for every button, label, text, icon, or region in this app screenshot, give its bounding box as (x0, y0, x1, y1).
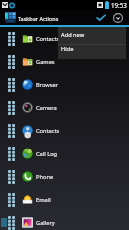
button[interactable]: Camera (0, 96, 129, 119)
button[interactable]: Email (0, 188, 129, 211)
staticText: Hide (61, 45, 74, 53)
staticText: Games (36, 58, 55, 66)
button[interactable]: Phone (0, 165, 129, 188)
staticText: Phone (36, 173, 54, 181)
button[interactable]: Browser (0, 73, 129, 96)
staticText: Taskbar Actions (18, 15, 59, 22)
staticText: Gallery (36, 219, 55, 227)
staticText: 19:53 (111, 1, 127, 9)
button[interactable]: Contacts (0, 27, 129, 50)
button[interactable]: Gallery (0, 211, 129, 230)
staticText: Contacts (36, 127, 60, 135)
staticText: Browser (36, 81, 59, 89)
staticText: Email (36, 196, 51, 204)
button[interactable]: Games (0, 50, 129, 73)
staticText: Add new (61, 31, 85, 39)
staticText: Contacts (36, 35, 60, 43)
button[interactable]: Done (93, 10, 109, 25)
button[interactable]: Call Log (0, 142, 129, 165)
button[interactable]: More options (110, 10, 126, 25)
button[interactable]: Contacts (0, 119, 129, 142)
button[interactable]: Add new (58, 27, 126, 44)
staticText: Camera (36, 104, 57, 112)
button[interactable]: Hide (58, 43, 126, 59)
staticText: Call Log (36, 150, 58, 158)
